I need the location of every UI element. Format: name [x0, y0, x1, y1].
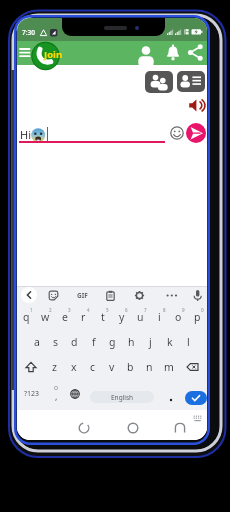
button[interactable] [188, 98, 203, 113]
button[interactable]: d [65, 329, 84, 354]
button[interactable]: k [160, 329, 179, 354]
staticText: d [71, 335, 78, 349]
staticText: 7 [144, 307, 147, 313]
button[interactable]: i [150, 304, 169, 329]
button[interactable]: l [179, 329, 198, 354]
button[interactable] [21, 287, 37, 303]
button[interactable]: p [188, 304, 207, 329]
button[interactable] [186, 123, 206, 143]
staticText: 3 [68, 307, 71, 313]
button[interactable]: c [83, 354, 102, 379]
staticText: b [127, 360, 134, 374]
button[interactable]: English [90, 391, 154, 403]
staticText: r [81, 310, 86, 324]
staticText: n [146, 360, 153, 374]
staticText: q [23, 310, 30, 324]
staticText: w [41, 310, 50, 324]
staticText: i [158, 310, 161, 324]
staticText: 1 [30, 307, 33, 313]
button[interactable] [17, 354, 45, 379]
staticText: 6 [125, 307, 128, 313]
staticText: m [164, 360, 174, 374]
button[interactable] [18, 46, 31, 59]
button[interactable]: z [45, 354, 64, 379]
button[interactable]: GIF [73, 289, 92, 301]
staticText: Join [44, 48, 63, 61]
staticText: g [109, 335, 116, 349]
staticText: c [90, 360, 96, 374]
staticText: v [109, 360, 115, 374]
button[interactable] [48, 290, 59, 301]
button[interactable] [31, 41, 61, 65]
button[interactable]: w [36, 304, 55, 329]
button[interactable]: m [159, 354, 178, 379]
button[interactable] [185, 391, 207, 405]
staticText: o [175, 310, 182, 324]
button[interactable] [77, 421, 91, 435]
staticText: 0 [201, 307, 204, 313]
button[interactable]: s [46, 329, 65, 354]
staticText: t [101, 310, 105, 324]
staticText: y [119, 310, 125, 324]
button[interactable]: e [55, 304, 74, 329]
button[interactable] [136, 44, 154, 63]
staticText: 2 [49, 307, 52, 313]
staticText: 9 [182, 307, 185, 313]
button[interactable]: v [102, 354, 121, 379]
button[interactable]: o [169, 304, 188, 329]
staticText: f [92, 335, 96, 349]
staticText: e [62, 310, 68, 324]
button[interactable]: f [84, 329, 103, 354]
staticText: k [167, 335, 173, 349]
button[interactable] [178, 354, 207, 379]
staticText: l [187, 335, 190, 349]
button[interactable]: x [64, 354, 83, 379]
button[interactable]: t [93, 304, 112, 329]
staticText: u [137, 310, 144, 324]
button[interactable] [134, 290, 145, 301]
button[interactable] [173, 421, 187, 435]
staticText: z [52, 360, 57, 374]
button[interactable]: q [17, 304, 36, 329]
button[interactable] [164, 43, 182, 62]
staticText: Hi [20, 127, 31, 142]
button[interactable]: h [122, 329, 141, 354]
button[interactable]: , [49, 382, 63, 406]
button[interactable] [164, 290, 180, 301]
button[interactable]: g [103, 329, 122, 354]
button[interactable]: y [112, 304, 131, 329]
button[interactable]: j [141, 329, 160, 354]
button[interactable] [67, 382, 82, 406]
button[interactable] [187, 44, 204, 61]
staticText: , [55, 390, 58, 402]
staticText: 7:30 [22, 28, 35, 37]
button[interactable] [170, 126, 184, 140]
staticText: h [128, 335, 135, 349]
staticText: GIF [77, 291, 88, 300]
staticText: x [71, 360, 77, 374]
staticText: p [194, 310, 201, 324]
staticText: a [34, 335, 40, 349]
staticText: 8 [163, 307, 166, 313]
button[interactable]: u [131, 304, 150, 329]
staticText: j [149, 335, 152, 349]
button[interactable]: n [140, 354, 159, 379]
staticText: English [111, 393, 134, 402]
staticText: s [53, 335, 59, 349]
staticText: ?123 [24, 389, 40, 399]
button[interactable] [192, 289, 203, 302]
button[interactable] [145, 71, 173, 93]
button[interactable]: ?123 [19, 382, 44, 406]
button[interactable] [105, 290, 116, 301]
button[interactable]: b [121, 354, 140, 379]
button[interactable]: r [74, 304, 93, 329]
staticText: 4 [87, 307, 90, 313]
button[interactable]: a [27, 329, 46, 354]
button[interactable] [177, 71, 205, 92]
staticText: 5 [106, 307, 109, 313]
button[interactable] [126, 421, 140, 435]
